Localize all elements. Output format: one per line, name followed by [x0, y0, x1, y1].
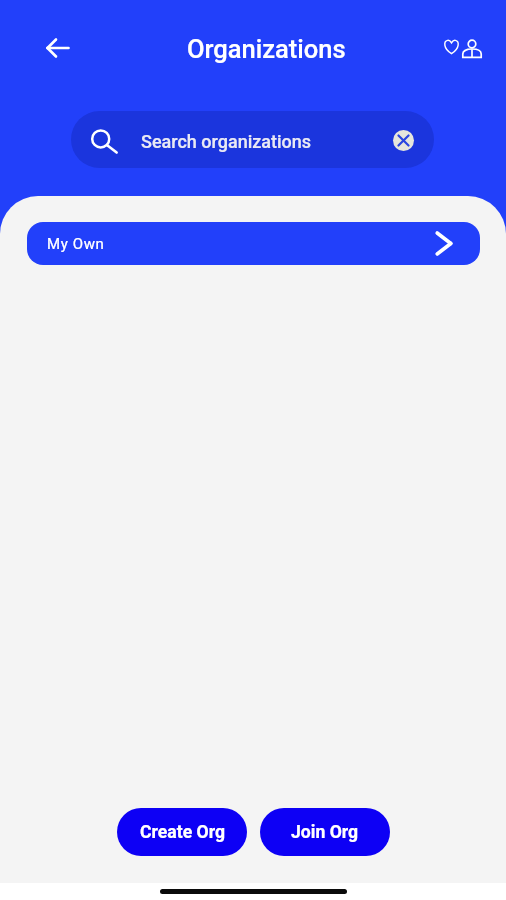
staticText: Organizations — [187, 34, 346, 64]
button[interactable]: Search organizations — [71, 111, 434, 168]
staticText: Create Org — [140, 822, 225, 843]
button[interactable]: My Own — [27, 222, 480, 265]
button[interactable]: Create Org — [117, 808, 247, 856]
button[interactable]: Join Org — [260, 808, 390, 856]
button[interactable]: Back — [46, 36, 70, 60]
staticText: Search organizations — [141, 131, 312, 152]
staticText: Join Org — [291, 822, 359, 843]
button[interactable]: Account — [462, 38, 482, 58]
button[interactable]: Clear search — [393, 130, 414, 151]
staticText: My Own — [47, 235, 105, 253]
button[interactable]: Favorites — [443, 39, 460, 54]
